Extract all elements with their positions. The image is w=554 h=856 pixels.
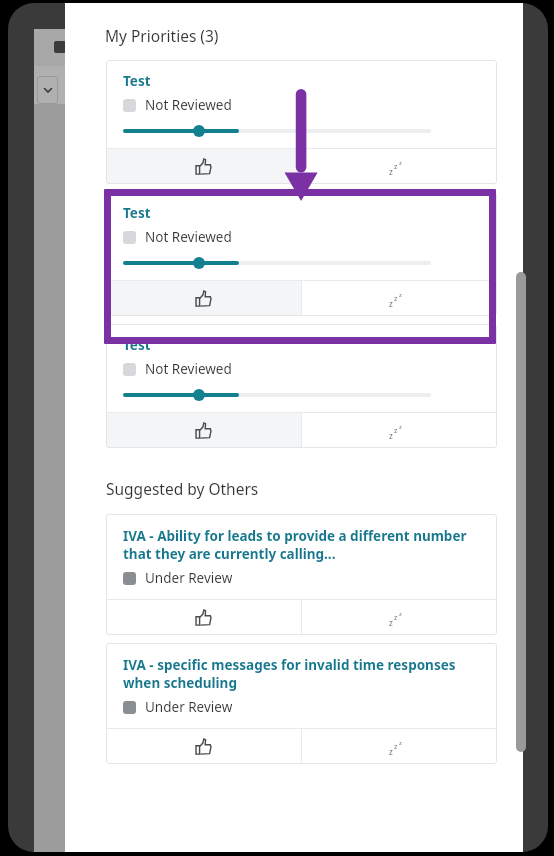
staticText: z xyxy=(394,426,398,436)
button[interactable]: Test xyxy=(106,324,497,448)
staticText: that they are currently calling... xyxy=(123,545,336,563)
staticText: z xyxy=(394,742,398,752)
staticText: z xyxy=(399,423,402,431)
staticText: z xyxy=(399,159,402,167)
button[interactable]: Snooze xyxy=(302,149,497,184)
button[interactable]: Snooze xyxy=(302,413,497,448)
button[interactable]: Snooze xyxy=(302,281,497,316)
staticText: IVA - Ability for leads to provide a dif… xyxy=(123,527,467,545)
button[interactable]: Vote up xyxy=(106,600,301,635)
staticText: z xyxy=(389,746,393,757)
staticText: z xyxy=(389,298,393,309)
staticText: Under Review xyxy=(145,698,233,716)
button[interactable]: IVA - specific messages for invalid time… xyxy=(106,643,497,764)
staticText: when scheduling xyxy=(123,674,237,692)
staticText: Test xyxy=(123,72,151,90)
button[interactable]: IVA - Ability for leads to provide a dif… xyxy=(106,514,497,635)
staticText: z xyxy=(389,617,393,628)
button[interactable]: Vote up xyxy=(106,281,301,316)
button[interactable] xyxy=(37,76,58,104)
staticText: z xyxy=(399,739,402,747)
button[interactable] xyxy=(123,125,481,137)
button[interactable]: Test xyxy=(106,60,497,184)
staticText: z xyxy=(394,294,398,304)
staticText: Test xyxy=(123,336,155,354)
button[interactable]: Vote up xyxy=(106,729,301,764)
button[interactable]: Vote up xyxy=(106,413,301,448)
button[interactable]: Snooze xyxy=(302,600,497,635)
staticText: z xyxy=(399,610,402,618)
button[interactable]: Snooze xyxy=(302,729,497,764)
staticText: z xyxy=(399,291,402,299)
button[interactable] xyxy=(123,257,481,269)
staticText: Under Review xyxy=(145,569,233,587)
staticText: Not Reviewed xyxy=(145,228,232,246)
staticText: Not Reviewed xyxy=(145,360,232,378)
staticText: Not Reviewed xyxy=(145,96,232,114)
staticText: z xyxy=(394,613,398,623)
staticText: z xyxy=(394,162,398,172)
staticText: z xyxy=(389,166,393,177)
staticText: My Priorities (3) xyxy=(105,25,219,46)
button[interactable]: Vote up xyxy=(106,149,301,184)
button[interactable]: Test xyxy=(106,192,497,316)
button[interactable] xyxy=(123,389,481,401)
staticText: z xyxy=(389,430,393,441)
staticText: Suggested by Others xyxy=(106,478,259,499)
staticText: IVA - specific messages for invalid time… xyxy=(123,656,456,674)
staticText: Test xyxy=(123,204,151,222)
